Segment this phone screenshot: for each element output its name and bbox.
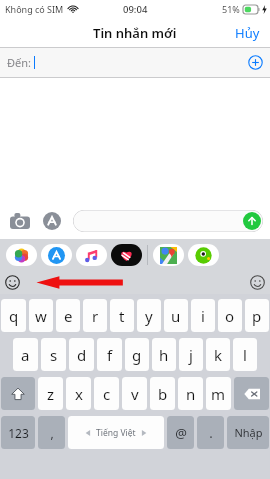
staticText: v: [131, 384, 139, 404]
button[interactable]: b: [150, 377, 175, 410]
button[interactable]: iMessage app: [188, 244, 219, 266]
button[interactable]: Backspace: [234, 377, 269, 410]
button[interactable]: Emoji keyboard: [5, 275, 20, 290]
staticText: i: [201, 306, 205, 326]
staticText: 09:04: [123, 3, 148, 16]
staticText: l: [243, 345, 247, 365]
button[interactable]: g: [125, 338, 149, 371]
button[interactable]: z: [38, 377, 63, 410]
button[interactable]: e: [56, 299, 80, 332]
button[interactable]: Nhập: [227, 416, 269, 449]
button[interactable]: l: [233, 338, 257, 371]
button[interactable]: j: [179, 338, 203, 371]
staticText: u: [171, 306, 181, 326]
button[interactable]: u: [164, 299, 188, 332]
button[interactable]: i: [191, 299, 215, 332]
staticText: r: [92, 306, 99, 326]
button[interactable]: h: [152, 338, 176, 371]
button[interactable]: 123: [1, 416, 35, 449]
button[interactable]: Send: [243, 212, 261, 230]
staticText: @: [175, 424, 187, 442]
button[interactable]: t: [110, 299, 134, 332]
staticText: 51%: [222, 3, 240, 15]
staticText: b: [158, 384, 168, 404]
button[interactable]: p: [245, 299, 269, 332]
button[interactable]: Space, Tiếng Việt: [68, 416, 164, 449]
button[interactable]: @: [167, 416, 194, 449]
staticText: 123: [8, 425, 29, 441]
button[interactable]: v: [122, 377, 147, 410]
staticText: o: [225, 306, 235, 326]
staticText: Không có SIM: [5, 3, 64, 15]
button[interactable]: a: [13, 338, 38, 371]
staticText: e: [64, 306, 73, 326]
staticText: t: [119, 306, 125, 326]
staticText: k: [214, 345, 223, 365]
staticText: Hủy: [235, 24, 260, 42]
staticText: n: [186, 384, 196, 404]
button[interactable]: .: [197, 416, 224, 449]
button[interactable]: iMessage app: [41, 244, 72, 266]
staticText: c: [103, 384, 111, 404]
button[interactable]: c: [94, 377, 119, 410]
staticText: x: [75, 384, 83, 404]
button[interactable]: Shift: [1, 377, 35, 410]
staticText: Tin nhắn mới: [93, 24, 177, 42]
button[interactable]: x: [66, 377, 91, 410]
button[interactable]: m: [206, 377, 231, 410]
staticText: Đến:: [7, 55, 31, 70]
button[interactable]: iMessage app: [153, 244, 184, 266]
staticText: z: [47, 384, 55, 404]
button[interactable]: s: [41, 338, 66, 371]
button[interactable]: w: [29, 299, 53, 332]
staticText: a: [21, 345, 30, 365]
button[interactable]: App Store: [39, 208, 65, 234]
button[interactable]: Add contact: [248, 55, 263, 70]
staticText: Nhập: [234, 425, 263, 440]
button[interactable]: App store browse: [250, 275, 265, 290]
button[interactable]: n: [178, 377, 203, 410]
button[interactable]: ,: [38, 416, 65, 449]
button[interactable]: f: [97, 338, 122, 371]
staticText: Tiếng Việt: [96, 427, 136, 439]
staticText: f: [107, 345, 113, 365]
staticText: w: [35, 306, 47, 326]
staticText: .: [209, 424, 213, 442]
button[interactable]: y: [137, 299, 161, 332]
staticText: ,: [50, 425, 54, 441]
button[interactable]: r: [83, 299, 107, 332]
staticText: j: [189, 345, 193, 365]
button[interactable]: Camera: [7, 208, 33, 234]
button[interactable]: o: [218, 299, 242, 332]
staticText: y: [145, 306, 153, 326]
staticText: q: [9, 306, 19, 326]
button[interactable]: iMessage app: [6, 244, 37, 266]
button[interactable]: iMessage app: [76, 244, 107, 266]
staticText: m: [211, 384, 226, 404]
button[interactable]: d: [69, 338, 94, 371]
button[interactable]: k: [206, 338, 230, 371]
button[interactable]: iMessage app: [111, 244, 142, 266]
staticText: s: [50, 345, 58, 365]
staticText: g: [132, 345, 142, 365]
staticText: d: [77, 345, 87, 365]
button[interactable]: q: [1, 299, 26, 332]
button[interactable]: Send: [73, 210, 263, 232]
staticText: h: [159, 345, 169, 365]
button[interactable]: Hủy: [225, 20, 270, 46]
staticText: p: [252, 306, 262, 326]
